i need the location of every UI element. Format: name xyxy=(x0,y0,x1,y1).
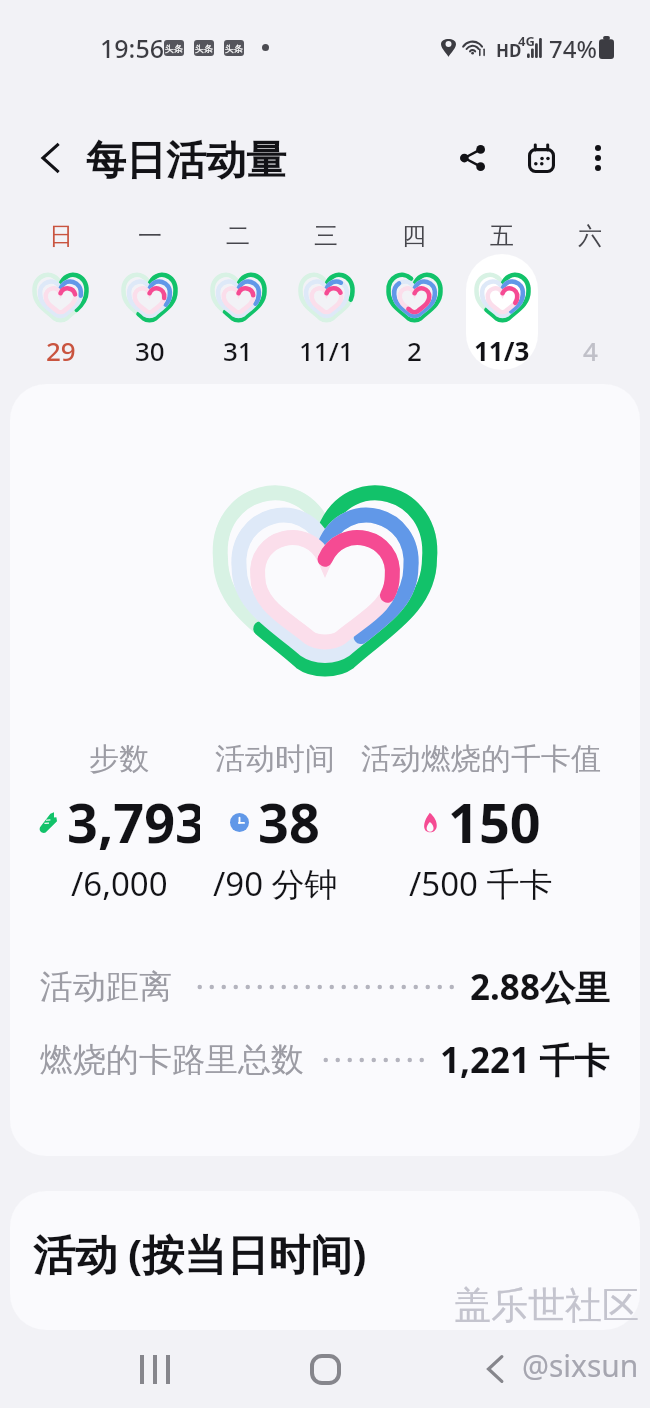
staticText: 3,793 xyxy=(67,785,200,859)
staticText: 29 xyxy=(46,333,76,368)
button[interactable]: 步数 xyxy=(38,740,200,906)
staticText: 头条 xyxy=(165,43,183,54)
staticText: 2 xyxy=(407,333,422,368)
staticText: 4G xyxy=(518,32,535,50)
staticText: 38 xyxy=(258,785,320,859)
staticText: 活动 (按当日时间) xyxy=(33,1225,367,1282)
staticText: 六 xyxy=(578,221,602,251)
staticText: 150 xyxy=(448,785,541,859)
staticText: 头条 xyxy=(225,43,243,54)
staticText: 1,221 千卡 xyxy=(440,1036,610,1084)
button[interactable]: More options xyxy=(568,116,628,200)
button[interactable]: 四 xyxy=(370,221,458,373)
staticText: 燃烧的卡路里总数 xyxy=(40,1039,304,1081)
staticText: 19:56 xyxy=(100,31,165,65)
staticText: 五 xyxy=(490,221,514,251)
button[interactable]: Back xyxy=(455,1330,535,1408)
staticText: 31 xyxy=(223,333,253,368)
staticText: 每日活动量 xyxy=(86,135,286,185)
button[interactable]: Back xyxy=(20,116,80,200)
button[interactable]: Share xyxy=(442,116,502,200)
staticText: 头条 xyxy=(195,43,213,54)
staticText: 三 xyxy=(314,221,338,251)
staticText: 盖乐世社区 xyxy=(454,1282,639,1329)
staticText: 一 xyxy=(138,221,162,251)
staticText: /6,000 xyxy=(71,861,168,906)
button[interactable]: 活动燃烧的千卡值 xyxy=(350,740,612,906)
staticText: 活动燃烧的千卡值 xyxy=(361,740,601,778)
staticText: 四 xyxy=(402,221,426,251)
button[interactable]: 活动时间 xyxy=(200,740,350,906)
staticText: 活动距离 xyxy=(40,966,172,1008)
button[interactable]: 六 xyxy=(546,221,634,373)
staticText: 活动时间 xyxy=(215,740,335,778)
staticText: 11/1 xyxy=(299,333,354,368)
button[interactable]: Home xyxy=(285,1330,365,1408)
button[interactable]: Recent apps xyxy=(115,1330,195,1408)
staticText: 日 xyxy=(49,221,73,251)
staticText: 74% xyxy=(549,32,597,65)
staticText: HD xyxy=(496,39,522,62)
staticText: 2.88公里 xyxy=(470,963,610,1011)
staticText: 30 xyxy=(135,333,165,368)
button[interactable]: 活动距离 xyxy=(10,950,640,1023)
staticText: 11/3 xyxy=(474,333,530,368)
button[interactable]: 三 xyxy=(282,221,370,373)
button[interactable]: Calendar xyxy=(511,116,571,200)
staticText: @sixsun xyxy=(522,1345,639,1386)
staticText: 二 xyxy=(226,221,250,251)
button[interactable]: 日 xyxy=(16,221,105,373)
button[interactable]: 五 xyxy=(458,221,546,373)
staticText: /500 千卡 xyxy=(409,861,553,906)
button[interactable]: 燃烧的卡路里总数 xyxy=(10,1023,640,1096)
staticText: /90 分钟 xyxy=(213,861,338,906)
button[interactable]: 一 xyxy=(105,221,194,373)
staticText: 4 xyxy=(583,333,598,368)
button[interactable]: 二 xyxy=(194,221,282,373)
staticText: 步数 xyxy=(89,740,149,778)
